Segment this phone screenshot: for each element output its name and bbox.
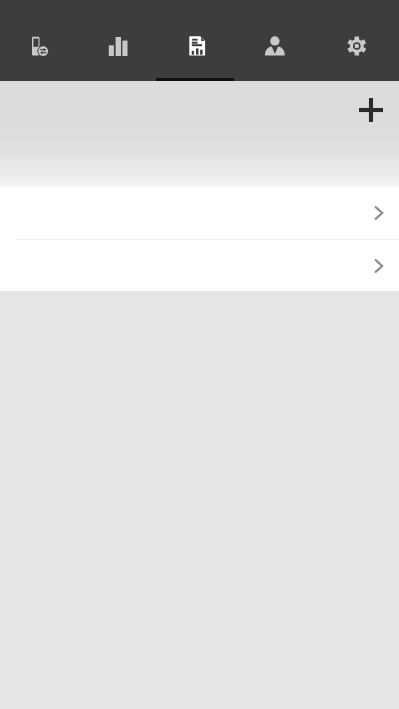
button[interactable]: Statistics xyxy=(80,0,159,81)
button[interactable]: Profile xyxy=(238,0,317,81)
button[interactable]: Add xyxy=(351,90,391,130)
button[interactable]: Reports xyxy=(159,0,238,81)
button[interactable] xyxy=(0,187,399,239)
button[interactable]: Settings xyxy=(317,0,396,81)
button[interactable]: Devices xyxy=(0,0,80,81)
button[interactable] xyxy=(0,240,399,291)
